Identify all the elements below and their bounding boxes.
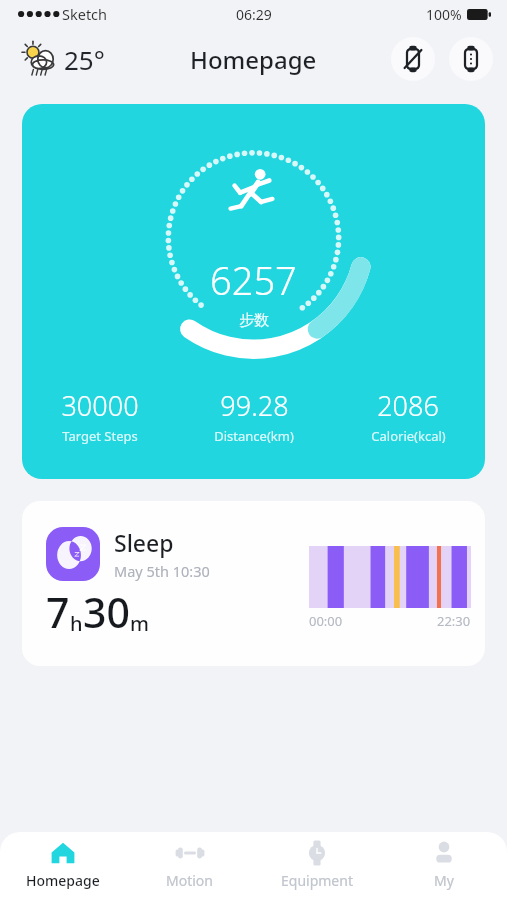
- staticText: 30: [83, 584, 130, 640]
- staticText: Distance(km): [214, 427, 294, 445]
- staticText: 25°: [64, 42, 105, 77]
- button[interactable]: Equipment: [253, 838, 380, 900]
- staticText: 00:00: [309, 612, 343, 630]
- staticText: Homepage: [190, 43, 317, 76]
- staticText: 2086: [377, 387, 439, 424]
- button[interactable]: Band disconnected: [391, 37, 435, 81]
- button[interactable]: Sleep: [22, 501, 485, 666]
- button[interactable]: My: [380, 838, 507, 900]
- staticText: 6257: [210, 254, 297, 306]
- staticText: 06:29: [236, 5, 272, 24]
- staticText: Sleep: [114, 527, 174, 558]
- staticText: 步数: [239, 311, 269, 330]
- button[interactable]: Homepage: [0, 838, 126, 900]
- staticText: My: [434, 871, 454, 890]
- staticText: 7: [46, 584, 70, 640]
- staticText: m: [130, 610, 149, 637]
- staticText: May 5th 10:30: [114, 561, 210, 581]
- button[interactable]: Weather: [14, 35, 109, 83]
- staticText: Calorie(kcal): [371, 427, 446, 445]
- button[interactable]: 6257: [22, 104, 485, 479]
- staticText: Motion: [166, 871, 213, 890]
- staticText: Sketch: [62, 4, 108, 24]
- button[interactable]: Band connected: [449, 37, 493, 81]
- button[interactable]: Motion: [126, 838, 253, 900]
- staticText: 100%: [426, 5, 462, 24]
- staticText: 30000: [61, 387, 139, 424]
- staticText: Homepage: [26, 871, 100, 890]
- staticText: 22:30: [437, 612, 471, 630]
- staticText: h: [70, 610, 83, 637]
- staticText: Equipment: [281, 871, 353, 890]
- other: Weather: [18, 39, 62, 79]
- staticText: 99.28: [220, 387, 289, 424]
- staticText: Target Steps: [62, 427, 138, 445]
